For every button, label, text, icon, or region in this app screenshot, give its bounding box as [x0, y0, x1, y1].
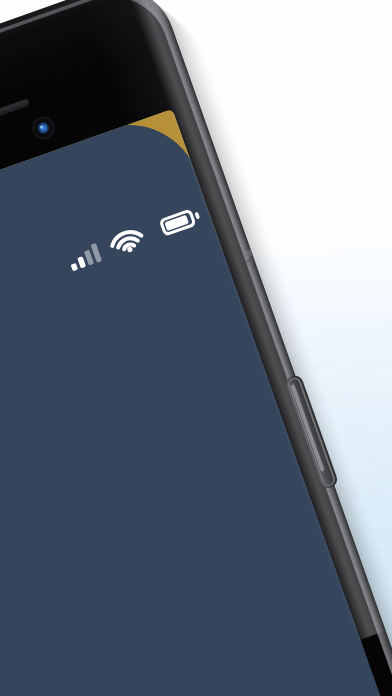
button[interactable]: Banking app phone preview: [0, 0, 392, 696]
